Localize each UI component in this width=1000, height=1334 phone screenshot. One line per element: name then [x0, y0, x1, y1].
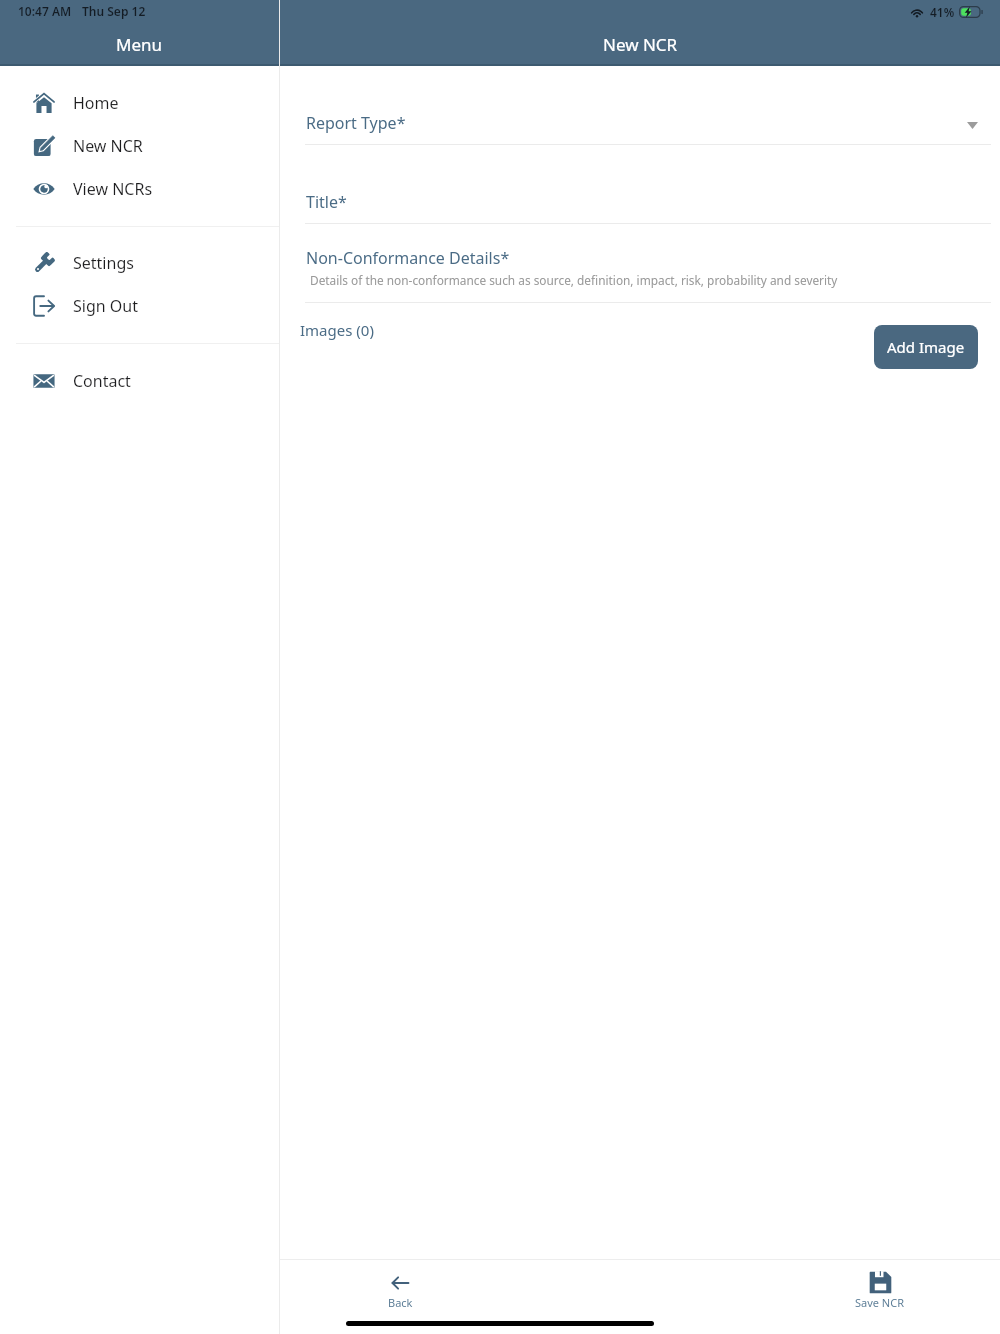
staticText: Report Type* — [306, 112, 406, 134]
button[interactable]: Title* — [300, 179, 990, 223]
button[interactable]: New NCR — [0, 124, 279, 167]
button[interactable]: Non-Conformance Details* — [300, 244, 990, 304]
staticText: Title* — [306, 191, 347, 213]
button[interactable]: Home — [0, 81, 279, 124]
staticText: 41% — [930, 4, 955, 20]
button[interactable]: Back — [280, 1260, 520, 1334]
button[interactable]: Sign Out — [0, 284, 279, 327]
button[interactable]: Add Image — [874, 325, 978, 369]
staticText: Non-Conformance Details* — [306, 247, 510, 269]
other: Back — [392, 1277, 409, 1289]
button[interactable]: Save NCR — [760, 1260, 1000, 1334]
staticText: 10:47 AM — [18, 3, 72, 19]
staticText: Thu Sep 12 — [82, 3, 146, 19]
staticText: Settings — [73, 252, 134, 274]
button[interactable]: Settings — [0, 241, 279, 284]
staticText: Contact — [73, 370, 131, 392]
button[interactable]: Contact — [0, 359, 279, 402]
staticText: Images (0) — [300, 320, 374, 340]
staticText: Details of the non-conformance such as s… — [310, 272, 838, 288]
staticText: New NCR — [73, 135, 143, 157]
staticText: New NCR — [603, 33, 678, 56]
staticText: Save NCR — [855, 1295, 905, 1310]
staticText: View NCRs — [73, 178, 153, 200]
staticText: Back — [388, 1295, 413, 1310]
staticText: Add Image — [887, 337, 965, 357]
staticText: Sign Out — [73, 295, 138, 317]
button[interactable]: Report Type* — [300, 100, 990, 144]
staticText: Home — [73, 92, 119, 114]
staticText: Menu — [116, 33, 163, 56]
button[interactable]: View NCRs — [0, 167, 279, 210]
other: Save NCR — [869, 1271, 892, 1294]
